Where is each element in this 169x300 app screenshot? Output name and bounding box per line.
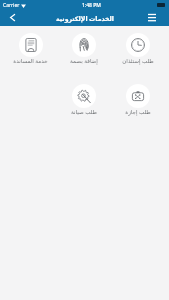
staticText: طلب إستئذان: [122, 57, 154, 65]
button[interactable]: طلب إستئذان: [111, 33, 165, 65]
staticText: Carrier: [3, 2, 20, 9]
staticText: طلب صيانة: [71, 108, 97, 116]
button[interactable]: طلب صيانة: [57, 84, 111, 116]
button[interactable]: طلب إجازة: [111, 84, 165, 116]
staticText: إضافة بصمة: [70, 57, 98, 65]
staticText: 1:48 PM: [82, 2, 101, 9]
button[interactable]: Menu: [135, 10, 169, 26]
staticText: الخدمات الإلكترونية: [56, 14, 114, 22]
staticText: خدمة المساندة: [13, 57, 48, 65]
staticText: طلب إجازة: [125, 108, 151, 116]
button[interactable]: إضافة بصمة: [57, 33, 111, 65]
button[interactable]: Back: [0, 10, 24, 26]
button[interactable]: خدمة المساندة: [4, 33, 57, 65]
